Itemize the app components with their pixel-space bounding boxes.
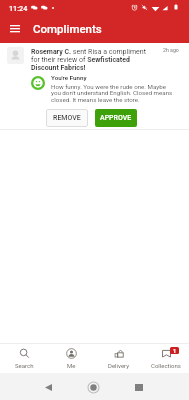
button[interactable]: Home [71, 373, 116, 400]
staticText: APPROVE [100, 114, 132, 122]
staticText: 1 [173, 348, 177, 354]
button[interactable]: Recent apps [116, 373, 161, 400]
staticText: Me [67, 362, 76, 369]
staticText: Delivery [108, 362, 130, 369]
button[interactable]: 1 [142, 344, 189, 373]
staticText: Compliments [33, 22, 102, 35]
button[interactable]: Rosemary C. sent Risa a compliment for t… [0, 43, 189, 129]
staticText: 2h ago [163, 47, 179, 53]
staticText: Rosemary C. sent Risa a compliment for t… [31, 48, 151, 72]
button[interactable]: Delivery [95, 344, 142, 373]
staticText: You're Funny [51, 74, 87, 81]
button[interactable]: APPROVE [95, 109, 137, 127]
button[interactable]: Me [48, 344, 95, 373]
staticText: Search [15, 362, 34, 369]
button[interactable]: Open navigation drawer [2, 15, 28, 43]
button[interactable]: Search [0, 344, 48, 373]
staticText: 11:24 [9, 4, 28, 12]
button[interactable]: REMOVE [46, 109, 88, 127]
staticText: Collections [151, 362, 181, 369]
button[interactable]: Back [26, 373, 71, 400]
staticText: How funny. You were the rude one. Maybe … [51, 83, 175, 104]
staticText: REMOVE [53, 114, 81, 122]
